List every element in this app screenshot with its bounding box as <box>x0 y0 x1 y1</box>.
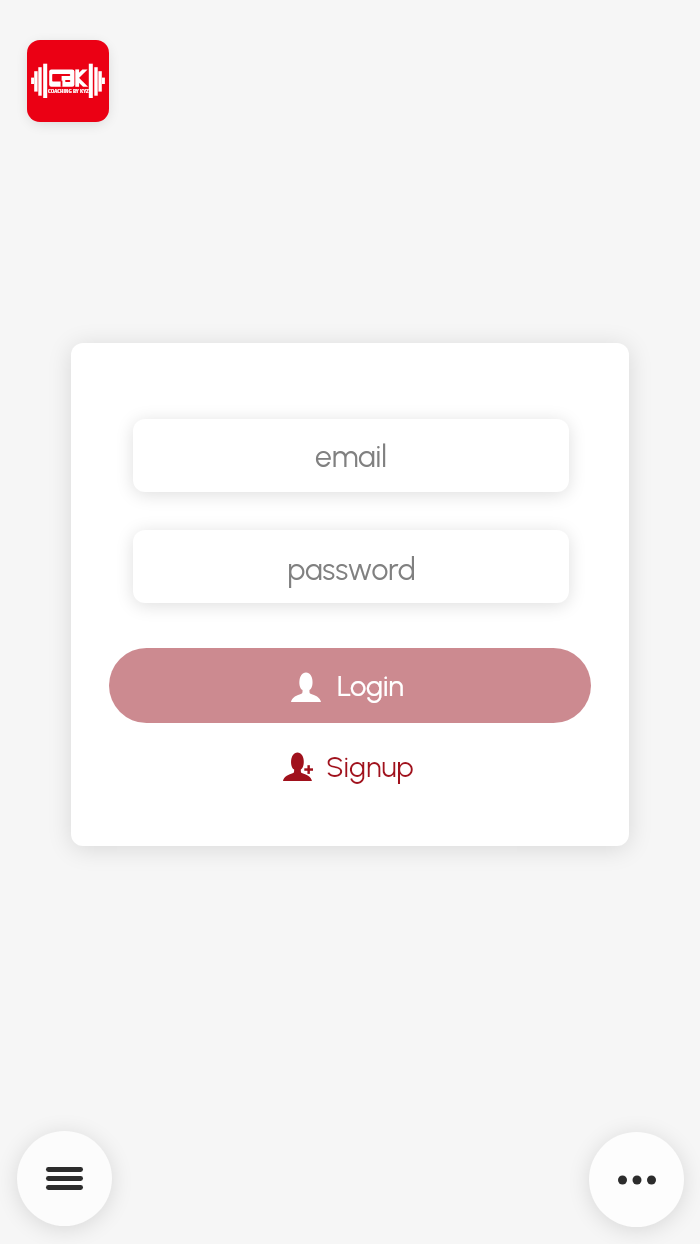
staticText: COACHING BY KYZ <box>48 87 89 94</box>
staticText: email <box>315 438 387 474</box>
button[interactable]: email <box>133 419 569 492</box>
button[interactable]: Signup <box>275 743 422 790</box>
button[interactable]: CBK Coaching by Kyz logo <box>27 40 109 122</box>
button[interactable]: More options <box>589 1132 684 1227</box>
staticText: Login <box>337 668 404 703</box>
button[interactable]: Menu <box>17 1131 112 1226</box>
button[interactable]: Login <box>109 648 591 723</box>
button[interactable]: password <box>133 530 569 603</box>
staticText: Signup <box>326 749 414 784</box>
staticText: password <box>287 551 416 587</box>
